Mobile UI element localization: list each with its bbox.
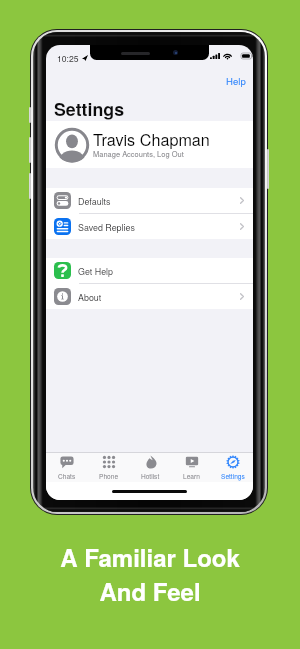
staticText: And Feel (99, 574, 201, 608)
staticText: Learn (183, 471, 200, 480)
button[interactable]: Get Help (46, 258, 253, 283)
staticText: Settings (54, 96, 125, 121)
staticText: Phone (99, 471, 119, 480)
button[interactable]: Chats (46, 453, 88, 482)
staticText: Travis Chapman (93, 127, 210, 150)
staticText: 10:25 (57, 52, 79, 64)
staticText: Chats (58, 471, 76, 480)
staticText: Hotlist (141, 471, 160, 480)
staticText: A Familiar Look (60, 540, 240, 574)
button[interactable]: Hotlist (130, 453, 171, 482)
button[interactable]: Help (220, 71, 252, 91)
staticText: Saved Replies (78, 221, 135, 234)
button[interactable]: Travis Chapman (46, 121, 253, 168)
staticText: Settings (221, 471, 245, 480)
button[interactable]: Settings (212, 453, 253, 482)
button[interactable]: About (46, 284, 253, 309)
staticText: Manage Accounts, Log Out (93, 148, 184, 159)
button[interactable]: Saved Replies (46, 214, 253, 239)
staticText: Get Help (78, 265, 113, 278)
button[interactable]: Defaults (46, 188, 253, 213)
button[interactable]: Learn (171, 453, 212, 482)
staticText: Defaults (78, 195, 111, 208)
button[interactable]: Phone (88, 453, 130, 482)
staticText: About (78, 291, 102, 304)
staticText: Help (226, 74, 246, 88)
